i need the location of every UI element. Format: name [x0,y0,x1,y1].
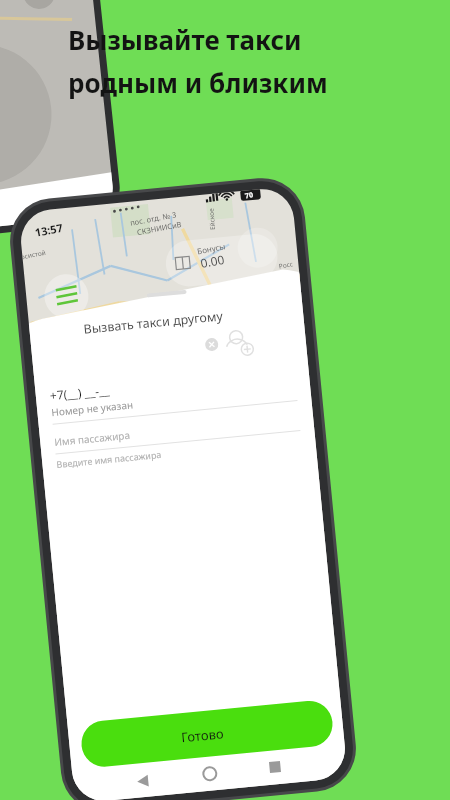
button[interactable]: Готово [0,0,170,30]
button[interactable]: Вызывайте такси родным и близким [0,0,450,800]
